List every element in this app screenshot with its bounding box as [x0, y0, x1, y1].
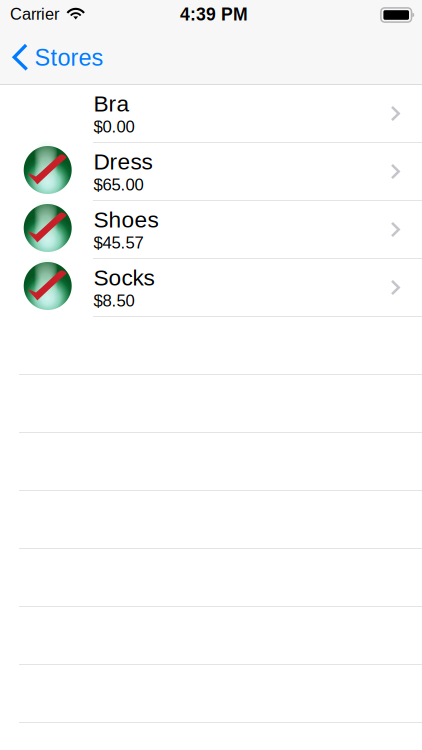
button[interactable]: Dress: [0, 143, 422, 201]
staticText: Shoes: [93, 207, 158, 232]
staticText: $65.00: [93, 175, 143, 194]
button[interactable]: Shoes: [0, 201, 422, 259]
staticText: $0.00: [93, 117, 134, 136]
staticText: Stores: [34, 44, 103, 71]
button[interactable]: Stores: [0, 30, 115, 85]
staticText: 4:39 PM: [180, 5, 248, 24]
staticText: Carrier: [10, 5, 59, 23]
staticText: Socks: [93, 265, 154, 290]
button[interactable]: Socks: [0, 259, 422, 317]
staticText: Dress: [93, 149, 152, 174]
staticText: Bra: [93, 91, 129, 116]
staticText: $8.50: [93, 291, 134, 310]
button[interactable]: Bra: [0, 85, 422, 143]
staticText: $45.57: [93, 233, 143, 252]
